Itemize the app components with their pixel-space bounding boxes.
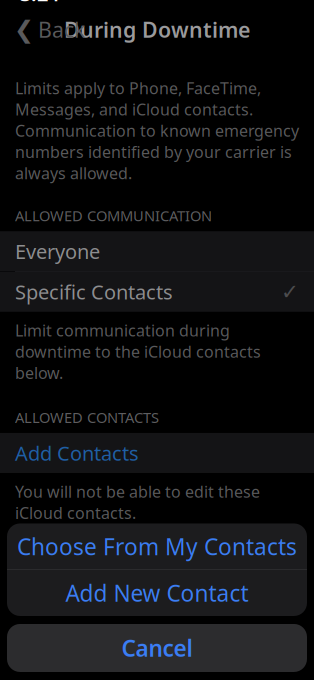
button[interactable]: Add Contacts — [0, 433, 314, 473]
staticText: You will not be able to edit these iClou… — [15, 481, 260, 523]
staticText: Add New Contact — [65, 578, 248, 608]
staticText: 3:24 — [20, 0, 59, 7]
staticText: Limit communication during downtime to t… — [15, 320, 261, 383]
staticText: Specific Contacts — [15, 278, 173, 305]
staticText: During Downtime — [64, 15, 250, 44]
staticText: Add Contacts — [15, 440, 139, 466]
staticText: ❮ — [14, 16, 34, 43]
button[interactable]: Cancel — [7, 624, 307, 672]
staticText: Back — [38, 15, 85, 44]
button[interactable]: Choose From My Contacts — [7, 523, 307, 569]
button[interactable]: Everyone — [0, 231, 314, 271]
staticText: Choose From My Contacts — [17, 531, 297, 561]
button[interactable]: Specific Contacts — [0, 272, 314, 312]
button[interactable]: Add New Contact — [7, 570, 307, 616]
button[interactable]: ❮ — [4, 9, 95, 50]
staticText: ✓ — [281, 280, 299, 304]
staticText: Cancel — [121, 633, 192, 663]
staticText: Limits apply to Phone, FaceTime, Message… — [15, 77, 299, 184]
staticText: Everyone — [15, 238, 100, 265]
staticText: ALLOWED CONTACTS — [15, 407, 159, 427]
staticText: ALLOWED COMMUNICATION — [15, 206, 212, 225]
